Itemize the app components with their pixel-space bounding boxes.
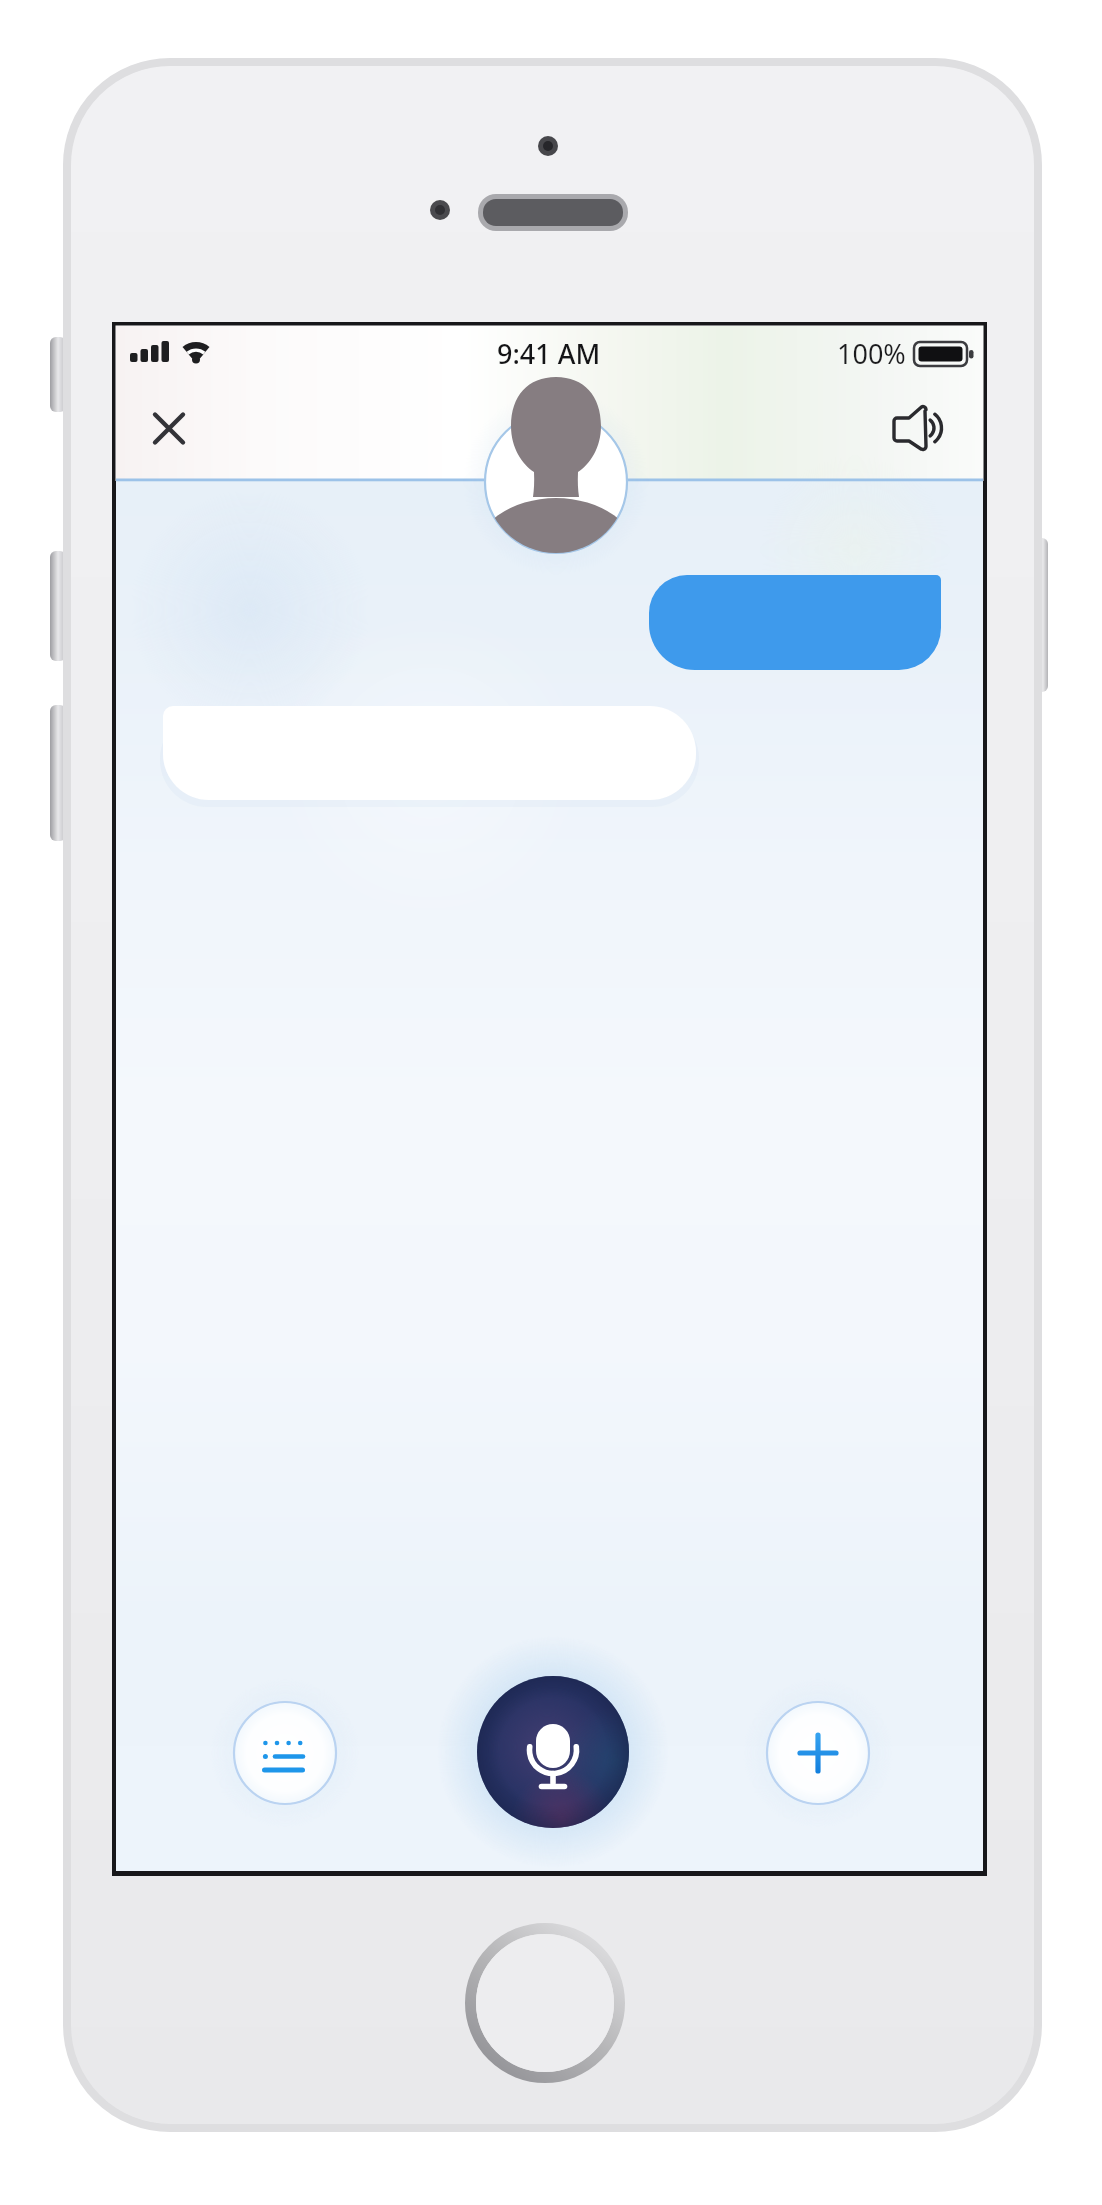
- button[interactable]: [485, 411, 627, 553]
- button[interactable]: [891, 400, 947, 456]
- button[interactable]: [649, 575, 941, 670]
- button[interactable]: [465, 1923, 625, 2083]
- button[interactable]: [477, 1676, 629, 1828]
- button[interactable]: [163, 706, 696, 801]
- button[interactable]: [767, 1702, 869, 1804]
- button[interactable]: [141, 400, 197, 456]
- staticText: 100%: [837, 335, 906, 371]
- button[interactable]: [234, 1702, 336, 1804]
- staticText: 9:41 AM: [497, 335, 601, 371]
